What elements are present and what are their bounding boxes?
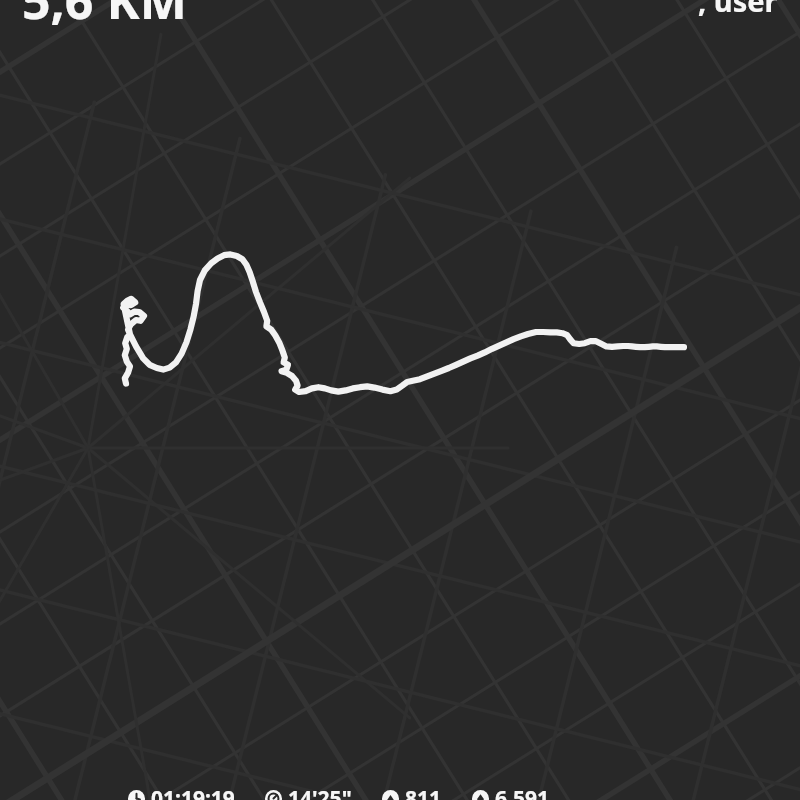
staticText: 14'25" (288, 784, 352, 800)
staticText: 6.591 (495, 784, 549, 800)
button[interactable]: 5,6 KM (22, 0, 187, 34)
button[interactable]: 14'25" (265, 784, 352, 800)
button[interactable]: 811 (382, 784, 442, 800)
button[interactable]: 6.591 (472, 784, 549, 800)
button[interactable]: , user (698, 0, 778, 20)
button[interactable]: 01:19:19 (128, 784, 235, 800)
staticText: 811 (405, 784, 442, 800)
staticText: 5,6 KM (22, 0, 187, 34)
staticText: 01:19:19 (151, 784, 235, 800)
staticText: , user (698, 0, 778, 20)
